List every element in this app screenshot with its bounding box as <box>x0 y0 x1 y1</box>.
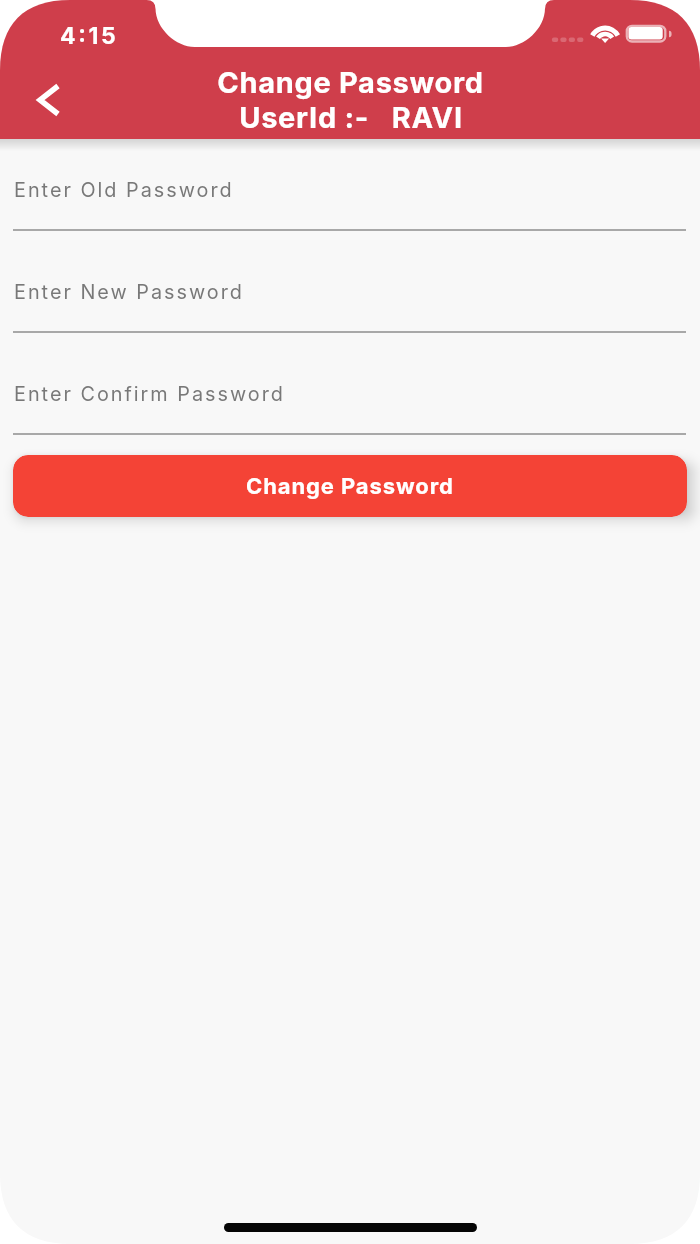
staticText: Enter Confirm Password <box>14 382 285 406</box>
staticText: Change Password <box>217 65 484 100</box>
button[interactable]: Back <box>21 72 77 128</box>
staticText: Enter New Password <box>14 280 244 304</box>
button[interactable]: Enter Confirm Password <box>0 370 700 434</box>
button[interactable]: Enter Old Password <box>0 166 700 230</box>
button[interactable]: Enter New Password <box>0 268 700 332</box>
button[interactable]: Change Password <box>13 455 687 517</box>
staticText: Enter Old Password <box>14 178 234 202</box>
staticText: Change Password <box>246 473 454 500</box>
staticText: UserId :- RAVI <box>239 100 463 135</box>
staticText: 4:15 <box>60 22 119 50</box>
